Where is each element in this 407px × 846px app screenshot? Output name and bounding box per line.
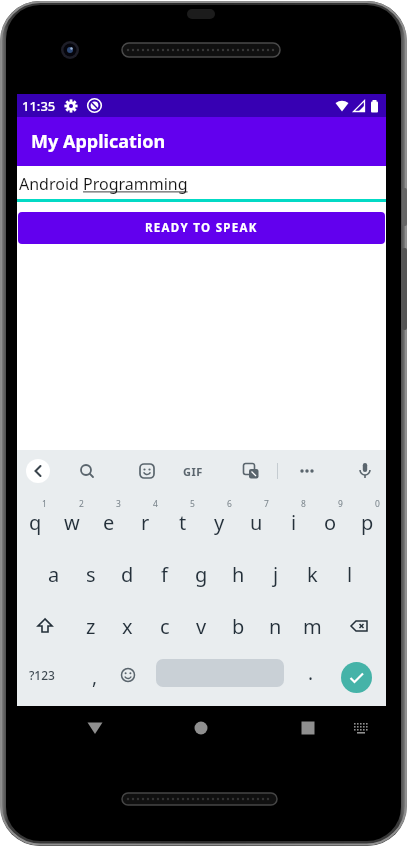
- button[interactable]: 9: [312, 495, 349, 548]
- staticText: d: [121, 561, 134, 588]
- button[interactable]: Android Programming: [17, 166, 386, 202]
- staticText: p: [361, 509, 374, 536]
- button[interactable]: c: [146, 600, 183, 652]
- staticText: b: [232, 613, 245, 640]
- staticText: m: [303, 613, 322, 640]
- button[interactable]: l: [331, 548, 368, 600]
- staticText: 1: [42, 498, 47, 510]
- staticText: t: [179, 509, 187, 536]
- button[interactable]: 0: [349, 495, 386, 548]
- staticText: q: [29, 509, 42, 536]
- button[interactable]: [81, 714, 109, 742]
- staticText: g: [195, 561, 208, 588]
- staticText: 2: [79, 498, 84, 510]
- button[interactable]: 7: [238, 495, 275, 548]
- button[interactable]: GIF: [183, 464, 203, 479]
- staticText: a: [48, 561, 60, 588]
- staticText: f: [161, 561, 168, 588]
- staticText: k: [307, 561, 318, 588]
- staticText: 6: [227, 498, 232, 510]
- button[interactable]: 6: [201, 495, 238, 548]
- button[interactable]: j: [257, 548, 294, 600]
- staticText: v: [196, 613, 207, 640]
- button[interactable]: 4: [127, 495, 164, 548]
- staticText: r: [141, 509, 150, 536]
- button[interactable]: [347, 714, 375, 742]
- button[interactable]: f: [146, 548, 183, 600]
- staticText: e: [103, 509, 115, 536]
- staticText: c: [160, 613, 170, 640]
- staticText: j: [273, 561, 279, 588]
- staticText: x: [122, 613, 133, 640]
- staticText: 11:35: [22, 97, 56, 115]
- button[interactable]: v: [183, 600, 220, 652]
- staticText: h: [232, 561, 245, 588]
- button[interactable]: 8: [275, 495, 312, 548]
- staticText: z: [86, 613, 96, 640]
- staticText: o: [324, 509, 337, 536]
- button[interactable]: .: [308, 660, 314, 686]
- button[interactable]: [298, 462, 316, 480]
- staticText: 5: [190, 498, 195, 510]
- staticText: Android Programming: [19, 173, 188, 195]
- button[interactable]: s: [72, 548, 109, 600]
- staticText: 8: [301, 498, 306, 510]
- button[interactable]: 1: [17, 495, 53, 548]
- button[interactable]: h: [220, 548, 257, 600]
- staticText: READY TO SPEAK: [145, 220, 258, 236]
- button[interactable]: [78, 462, 96, 480]
- button[interactable]: m: [294, 600, 331, 652]
- button[interactable]: [156, 659, 284, 687]
- staticText: 0: [375, 498, 380, 510]
- button[interactable]: 3: [90, 495, 127, 548]
- button[interactable]: [331, 600, 386, 652]
- staticText: u: [250, 509, 263, 536]
- button[interactable]: k: [294, 548, 331, 600]
- staticText: l: [347, 561, 353, 588]
- button[interactable]: ?123: [17, 652, 67, 698]
- staticText: w: [64, 509, 80, 536]
- staticText: i: [291, 509, 297, 536]
- staticText: My Application: [31, 129, 166, 154]
- staticText: 9: [338, 498, 343, 510]
- button[interactable]: [341, 662, 372, 693]
- button[interactable]: 5: [164, 495, 201, 548]
- button[interactable]: [187, 714, 215, 742]
- staticText: 3: [116, 498, 121, 510]
- button[interactable]: x: [109, 600, 146, 652]
- button[interactable]: d: [109, 548, 146, 600]
- staticText: 4: [153, 498, 158, 510]
- button[interactable]: b: [220, 600, 257, 652]
- staticText: s: [86, 561, 96, 588]
- staticText: 7: [264, 498, 269, 510]
- staticText: n: [269, 613, 282, 640]
- button[interactable]: g: [183, 548, 220, 600]
- button[interactable]: [355, 461, 375, 481]
- button[interactable]: 2: [53, 495, 90, 548]
- button[interactable]: [242, 462, 260, 480]
- staticText: ?123: [29, 667, 55, 683]
- button[interactable]: [138, 462, 156, 480]
- button[interactable]: ,: [92, 664, 98, 690]
- button[interactable]: READY TO SPEAK: [18, 212, 385, 244]
- button[interactable]: [26, 459, 50, 483]
- button[interactable]: n: [257, 600, 294, 652]
- button[interactable]: z: [72, 600, 109, 652]
- staticText: y: [214, 509, 225, 536]
- button[interactable]: [17, 600, 72, 652]
- button[interactable]: a: [35, 548, 72, 600]
- button[interactable]: [120, 667, 136, 683]
- button[interactable]: [294, 714, 322, 742]
